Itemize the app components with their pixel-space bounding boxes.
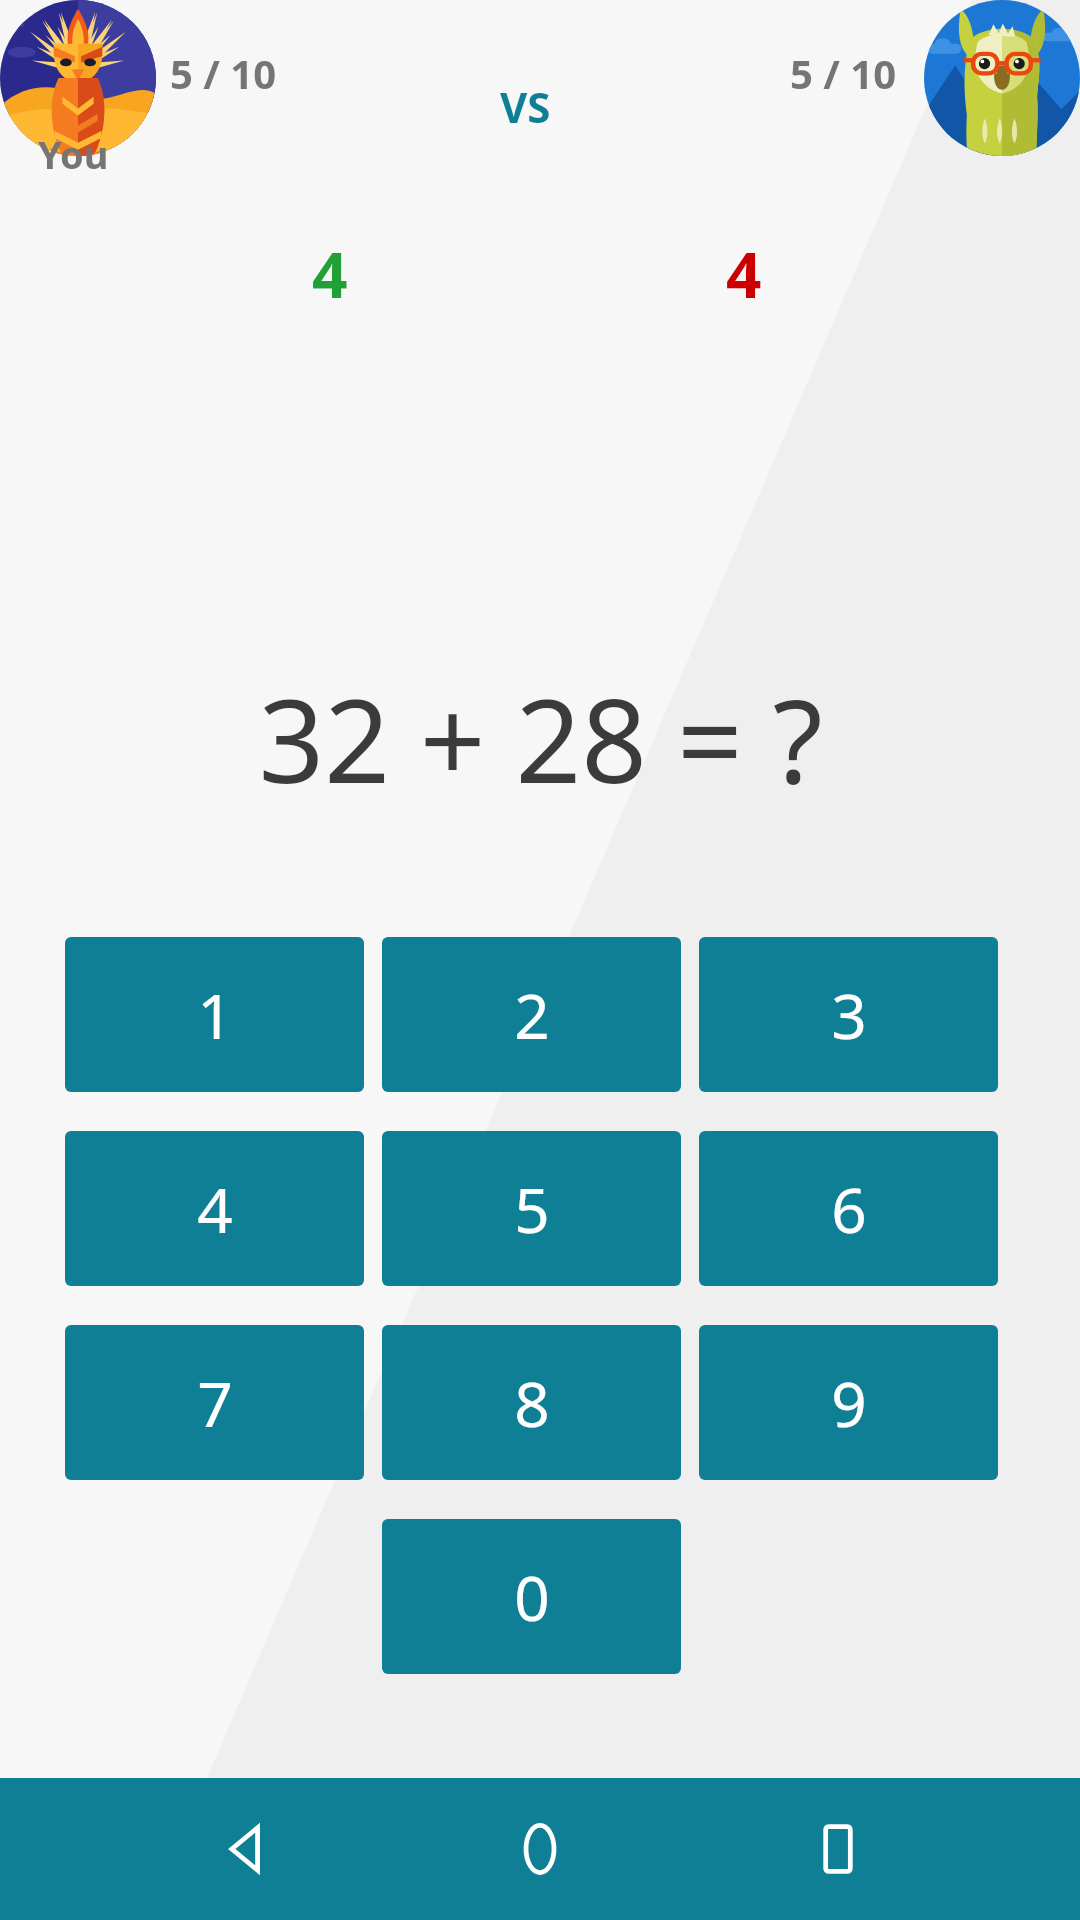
staticText: 9 [831,1361,867,1445]
button[interactable]: 0 [382,1519,681,1674]
button[interactable]: Your avatar [0,0,156,156]
button[interactable]: 3 [699,937,998,1092]
staticText: 6 [831,1167,867,1251]
staticText: 8 [514,1361,550,1445]
button[interactable]: Back [188,1794,298,1904]
button[interactable]: 4 [65,1131,364,1286]
staticText: 4 [197,1167,233,1251]
staticText: 4 [312,232,348,316]
staticText: 2 [514,973,550,1057]
staticText: 0 [514,1555,550,1639]
button[interactable]: Recent apps [783,1794,893,1904]
button[interactable]: 5 [382,1131,681,1286]
button[interactable]: 7 [65,1325,364,1480]
button[interactable]: 9 [699,1325,998,1480]
staticText: 5 [514,1167,550,1251]
staticText: 5 / 10 [790,46,897,100]
staticText: 3 [831,973,867,1057]
staticText: 4 [726,232,762,316]
button[interactable]: 6 [699,1131,998,1286]
staticText: 1 [197,973,233,1057]
button[interactable]: 8 [382,1325,681,1480]
staticText: You [38,128,109,180]
staticText: 5 / 10 [170,46,277,100]
button[interactable]: Home [485,1794,595,1904]
button[interactable]: 2 [382,937,681,1092]
staticText: VS [500,78,551,135]
staticText: 32 + 28 = ? [258,660,823,817]
button[interactable]: 1 [65,937,364,1092]
button[interactable]: Opponent avatar [924,0,1080,156]
staticText: 7 [197,1361,233,1445]
